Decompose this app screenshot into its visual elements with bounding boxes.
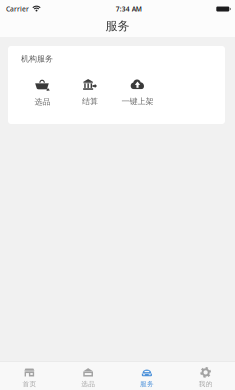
staticText: 选品 xyxy=(81,380,95,388)
staticText: Carrier xyxy=(6,5,29,13)
staticText: 一键上架 xyxy=(121,96,153,106)
button[interactable]: 首页 xyxy=(0,365,59,389)
button[interactable]: 一键上架 xyxy=(114,77,161,107)
button[interactable]: 结算 xyxy=(66,77,114,107)
staticText: 我的 xyxy=(199,380,213,388)
button[interactable]: 选品 xyxy=(19,77,66,107)
staticText: 服务 xyxy=(140,380,154,388)
button[interactable]: 服务 xyxy=(117,365,176,389)
staticText: 7:34 AM xyxy=(116,5,142,13)
staticText: 选品 xyxy=(34,97,50,107)
staticText: 机构服务 xyxy=(21,54,53,64)
staticText: 首页 xyxy=(22,380,36,388)
button[interactable]: 选品 xyxy=(59,365,118,389)
button[interactable]: 我的 xyxy=(176,365,235,389)
staticText: 结算 xyxy=(82,96,98,106)
staticText: 服务 xyxy=(105,19,129,33)
